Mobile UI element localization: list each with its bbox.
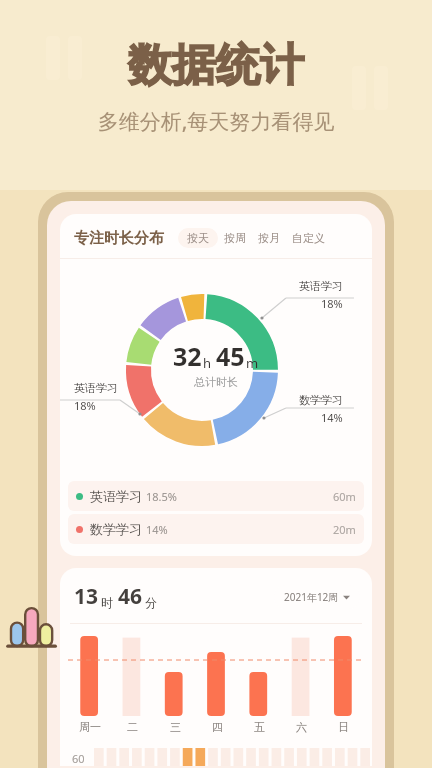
other: Select week: [343, 594, 350, 601]
staticText: 数学学习: [90, 521, 142, 537]
staticText: 六: [296, 720, 307, 734]
staticText: 18%: [74, 398, 96, 413]
staticText: 英语学习: [74, 381, 118, 395]
staticText: 13: [74, 582, 99, 611]
staticText: 60m: [333, 489, 356, 504]
staticText: 总计时长: [194, 375, 238, 389]
staticText: 二: [127, 720, 138, 734]
staticText: 2021年12周: [284, 590, 339, 604]
staticText: 18%: [321, 296, 343, 311]
button[interactable]: 2021年12周: [274, 585, 360, 609]
staticText: 五: [254, 720, 265, 734]
staticText: 时: [101, 595, 113, 610]
staticText: 按月: [258, 231, 280, 245]
staticText: 14%: [321, 410, 343, 425]
staticText: 46: [118, 582, 143, 611]
staticText: 60: [72, 751, 85, 766]
staticText: 按天: [187, 231, 209, 245]
button[interactable]: 按月: [252, 228, 286, 248]
staticText: 32: [173, 339, 202, 373]
staticText: 四: [212, 720, 223, 734]
other: Statistics decoration: [2, 598, 60, 654]
button[interactable]: 按天: [178, 228, 218, 248]
staticText: 英语学习: [299, 279, 343, 293]
button[interactable]: 数学学习: [68, 514, 364, 544]
staticText: 专注时长分布: [74, 229, 164, 248]
staticText: 45: [216, 339, 245, 373]
staticText: 日: [338, 720, 349, 734]
staticText: 14%: [146, 522, 168, 537]
staticText: m: [246, 354, 259, 372]
staticText: 英语学习: [90, 488, 142, 504]
button[interactable]: 自定义: [286, 228, 331, 248]
button[interactable]: 英语学习: [68, 481, 364, 511]
staticText: h: [203, 354, 212, 372]
staticText: 自定义: [292, 231, 325, 245]
staticText: 18.5%: [146, 489, 177, 504]
staticText: 周一: [79, 720, 101, 734]
staticText: 分: [145, 595, 157, 610]
staticText: 按周: [224, 231, 246, 245]
staticText: 数学学习: [299, 393, 343, 407]
button[interactable]: 按周: [218, 228, 252, 248]
staticText: 多维分析,每天努力看得见: [0, 107, 432, 136]
staticText: 三: [170, 720, 181, 734]
staticText: 20m: [333, 522, 356, 537]
staticText: 数据统计: [0, 38, 432, 93]
